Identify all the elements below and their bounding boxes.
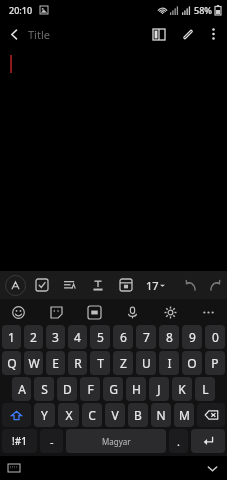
button[interactable]: Insert (116, 275, 136, 295)
staticText: 5 (97, 329, 104, 345)
button[interactable]: Q (2, 351, 21, 375)
staticText: Magyar (102, 436, 131, 447)
button[interactable]: D (57, 377, 77, 401)
button[interactable]: Back (0, 20, 28, 48)
staticText: W (28, 355, 40, 371)
staticText: U (142, 355, 151, 371)
button[interactable]: Checklist (32, 275, 52, 295)
button[interactable]: Y (34, 403, 55, 427)
staticText: T (97, 355, 104, 371)
button[interactable]: 6 (113, 325, 133, 349)
button[interactable]: 0 (205, 325, 225, 349)
staticText: V (111, 407, 119, 423)
staticText: 9 (189, 329, 196, 345)
button[interactable]: Keyboard layout (5, 459, 23, 477)
button[interactable]: M (174, 403, 194, 427)
staticText: J (157, 381, 161, 397)
button[interactable]: V (105, 403, 125, 427)
button[interactable]: Handwriting (4, 274, 26, 296)
staticText: I (167, 355, 172, 371)
button[interactable]: 17 (144, 278, 167, 293)
staticText: X (65, 407, 73, 423)
button[interactable]: !#1 (2, 429, 37, 453)
button[interactable]: F (80, 377, 100, 401)
button[interactable]: A (12, 377, 31, 401)
button[interactable]: 4 (68, 325, 87, 349)
button[interactable]: U (136, 351, 156, 375)
button[interactable]: O (182, 351, 202, 375)
button[interactable]: X (58, 403, 79, 427)
staticText: K (178, 381, 186, 397)
staticText: A (18, 381, 26, 397)
button[interactable]: J (149, 377, 169, 401)
button[interactable]: Enter (191, 429, 225, 453)
button[interactable]: 8 (159, 325, 179, 349)
button[interactable]: Paragraph style (60, 275, 80, 295)
staticText: 8 (166, 329, 173, 345)
staticText: M (179, 407, 190, 423)
button[interactable]: P (205, 351, 225, 375)
button[interactable]: E (46, 351, 65, 375)
button[interactable]: Z (113, 351, 133, 375)
button[interactable]: Redo (203, 273, 227, 297)
button[interactable]: R (68, 351, 87, 375)
button[interactable]: W (24, 351, 43, 375)
staticText: . (177, 434, 180, 449)
staticText: 2 (30, 329, 37, 345)
button[interactable]: Attach (173, 20, 201, 48)
staticText: 20:10 (9, 4, 33, 16)
button[interactable]: More options (201, 22, 225, 46)
staticText: G (109, 381, 118, 397)
button[interactable]: B (128, 403, 148, 427)
button[interactable]: G (103, 377, 123, 401)
staticText: Y (41, 407, 48, 423)
button[interactable]: Settings (151, 299, 189, 325)
staticText: 6 (120, 329, 127, 345)
button[interactable]: L (195, 377, 215, 401)
button[interactable]: GIF (75, 299, 113, 325)
button[interactable]: C (82, 403, 102, 427)
button[interactable]: Space (66, 429, 166, 453)
button[interactable]: 2 (24, 325, 43, 349)
staticText: R (74, 355, 82, 371)
button[interactable]: 3 (46, 325, 65, 349)
staticText: H (132, 381, 141, 397)
button[interactable]: Shift (2, 403, 31, 427)
button[interactable]: 9 (182, 325, 202, 349)
staticText: Q (7, 355, 17, 371)
button[interactable]: View mode (145, 20, 173, 48)
button[interactable]: Backspace (197, 403, 225, 427)
staticText: 17 (146, 278, 159, 293)
button[interactable]: N (151, 403, 171, 427)
staticText: F (87, 381, 94, 397)
button[interactable]: Text style (88, 275, 108, 295)
staticText: P (211, 355, 219, 371)
button[interactable]: 1 (2, 325, 21, 349)
staticText: O (187, 355, 197, 371)
staticText: C (88, 407, 96, 423)
staticText: N (156, 407, 166, 423)
button[interactable]: - (40, 429, 63, 453)
button[interactable]: Stickers (37, 299, 75, 325)
staticText: 58% (194, 4, 212, 16)
button[interactable]: Emoji (0, 299, 37, 325)
button[interactable]: Voice input (113, 299, 151, 325)
staticText: - (50, 434, 54, 449)
staticText: L (202, 381, 209, 397)
button[interactable]: More (189, 299, 227, 325)
button[interactable]: H (126, 377, 146, 401)
button[interactable]: . (169, 429, 188, 453)
staticText: E (52, 355, 59, 371)
staticText: 3 (52, 329, 59, 345)
button[interactable]: T (90, 351, 110, 375)
staticText: B (134, 407, 142, 423)
button[interactable]: 5 (90, 325, 110, 349)
button[interactable]: Undo (179, 273, 203, 297)
button[interactable]: K (172, 377, 192, 401)
button[interactable]: 7 (136, 325, 156, 349)
staticText: 7 (143, 329, 150, 345)
staticText: Title (28, 27, 50, 42)
button[interactable]: Hide keyboard (203, 459, 221, 477)
button[interactable]: I (159, 351, 179, 375)
button[interactable]: S (34, 377, 54, 401)
